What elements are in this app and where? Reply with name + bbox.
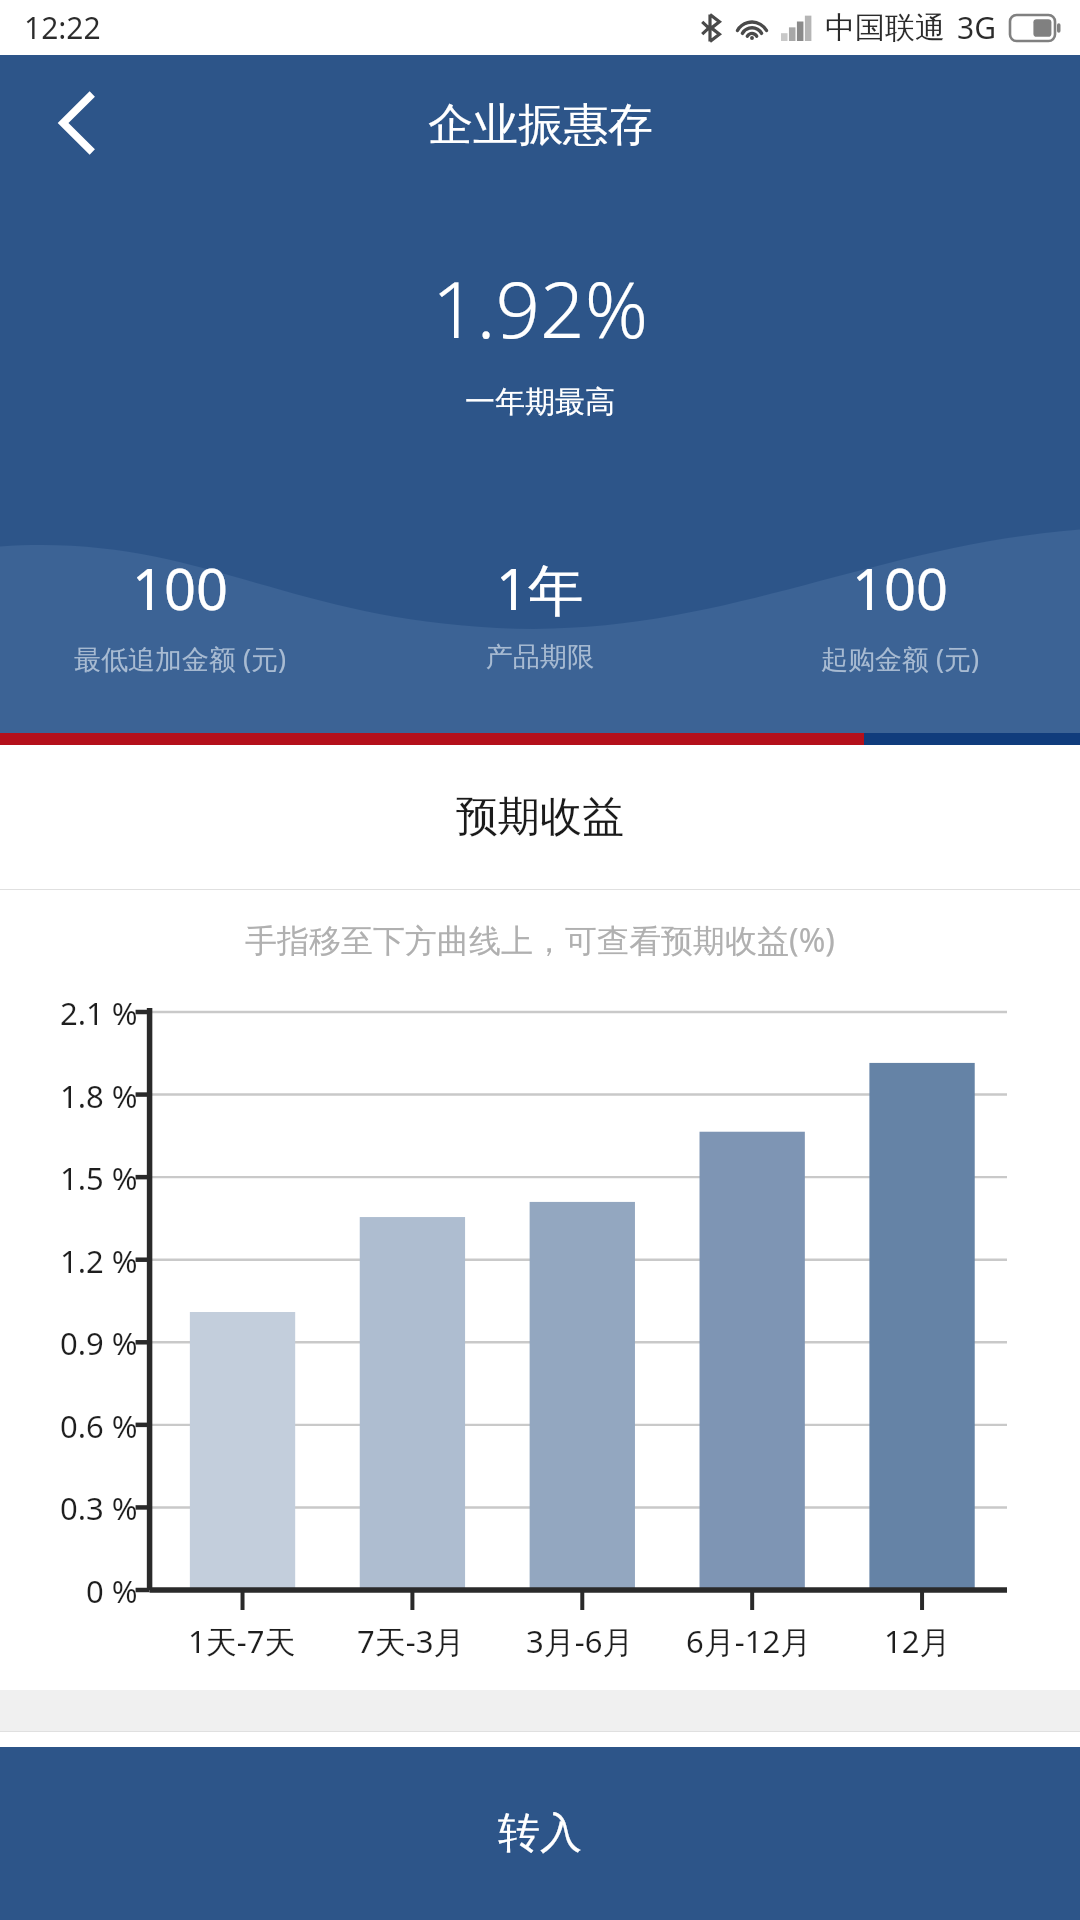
staticText: 一年期最高 xyxy=(465,383,615,421)
staticText: 1年 xyxy=(496,550,585,626)
staticText: 12:22 xyxy=(24,7,101,48)
staticText: 1.5 % xyxy=(60,1157,138,1199)
staticText: 12月 xyxy=(884,1620,951,1662)
staticText: 手指移至下方曲线上，可查看预期收益(%) xyxy=(245,918,835,962)
staticText: 企业振惠存 xyxy=(428,97,653,154)
staticText: 3G xyxy=(957,7,996,48)
staticText: 预期收益 xyxy=(456,791,624,844)
staticText: 6月-12月 xyxy=(686,1620,812,1662)
staticText: 0 % xyxy=(86,1570,138,1612)
button[interactable]: Back xyxy=(30,75,126,171)
staticText: 中国联通 xyxy=(825,9,945,47)
staticText: 1天-7天 xyxy=(188,1620,296,1662)
staticText: 100 xyxy=(132,550,229,626)
staticText: 0.9 % xyxy=(60,1322,138,1364)
staticText: 2.1 % xyxy=(60,992,138,1034)
staticText: 100 xyxy=(852,550,949,626)
staticText: 3月-6月 xyxy=(526,1620,634,1662)
button[interactable]: 转入 xyxy=(0,1747,1080,1920)
staticText: 起购金额 (元) xyxy=(821,640,980,677)
staticText: 7天-3月 xyxy=(357,1620,465,1662)
staticText: 1.8 % xyxy=(60,1075,138,1117)
staticText: 0.6 % xyxy=(60,1405,138,1447)
staticText: 产品期限 xyxy=(486,640,594,674)
staticText: 0.3 % xyxy=(60,1487,138,1529)
staticText: 1.2 % xyxy=(60,1240,138,1282)
staticText: 转入 xyxy=(498,1807,582,1860)
staticText: 1.92% xyxy=(432,255,648,361)
staticText: 最低追加金额 (元) xyxy=(74,640,287,677)
